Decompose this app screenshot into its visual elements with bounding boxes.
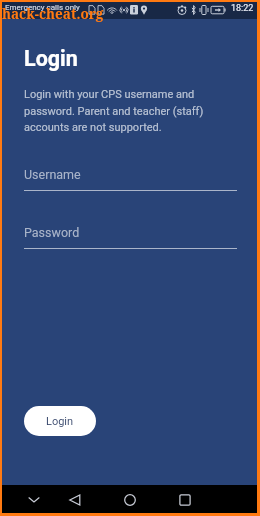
- staticText: Login with your CPS username and passwor…: [24, 88, 220, 133]
- staticText: Username: [24, 167, 81, 182]
- staticText: hack-cheat.org: [2, 5, 104, 23]
- button[interactable]: Back: [61, 486, 89, 514]
- staticText: Login: [46, 415, 74, 428]
- button[interactable]: Home: [116, 486, 144, 514]
- staticText: Emergency calls only: [5, 3, 80, 12]
- staticText: Login: [24, 46, 78, 71]
- button[interactable]: Hide keyboard: [20, 486, 48, 514]
- staticText: Password: [24, 225, 80, 240]
- button[interactable]: Recent apps: [171, 486, 199, 514]
- button[interactable]: Username: [24, 167, 237, 191]
- button[interactable]: Login: [24, 406, 96, 436]
- staticText: 18:22: [231, 3, 254, 14]
- button[interactable]: Password: [24, 225, 237, 249]
